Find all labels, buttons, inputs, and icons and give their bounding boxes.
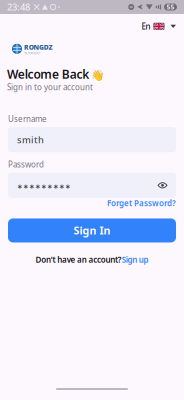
staticText: Don't have an account? bbox=[35, 254, 122, 265]
staticText: smith bbox=[17, 133, 44, 146]
staticText: Password bbox=[8, 159, 44, 170]
button[interactable]: Show password bbox=[158, 182, 167, 189]
button[interactable]: Sign up bbox=[122, 254, 149, 265]
staticText: 👋 bbox=[91, 69, 104, 81]
staticText: En bbox=[141, 21, 150, 32]
staticText: 55 bbox=[166, 3, 174, 11]
staticText: Welcome Back bbox=[7, 66, 89, 82]
staticText: Username bbox=[8, 114, 47, 124]
staticText: ∗∗∗∗∗∗∗∗∗ bbox=[17, 182, 71, 190]
staticText: Sign in to your account bbox=[7, 82, 93, 93]
staticText: 23:48 bbox=[7, 1, 30, 13]
staticText: Forget Password? bbox=[107, 198, 176, 208]
staticText: Sign In bbox=[73, 223, 110, 238]
staticText: Sign up bbox=[122, 254, 149, 265]
button[interactable]: En bbox=[139, 18, 178, 35]
staticText: TECHNOLOGY bbox=[24, 51, 41, 55]
button[interactable]: Forget Password? bbox=[107, 198, 176, 208]
button[interactable]: Sign In bbox=[8, 218, 176, 242]
staticText: RONGDZ bbox=[24, 43, 52, 51]
